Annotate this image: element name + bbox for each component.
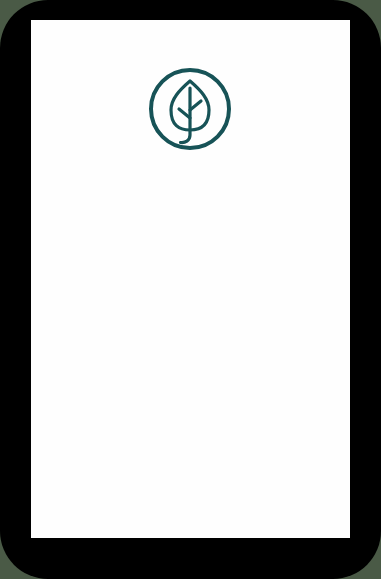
button[interactable]: App logo	[145, 64, 235, 154]
